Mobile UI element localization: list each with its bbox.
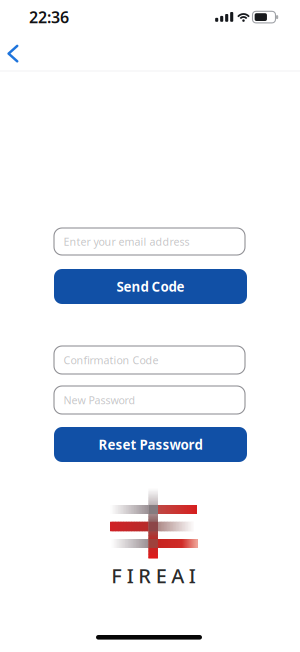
button[interactable]: Enter your email address bbox=[54, 228, 245, 255]
button[interactable]: Send Code bbox=[54, 269, 247, 304]
staticText: A bbox=[171, 562, 184, 589]
staticText: R bbox=[138, 562, 151, 589]
staticText: 22:36 bbox=[29, 6, 69, 28]
button[interactable] bbox=[1, 38, 25, 69]
staticText: Confirmation Code bbox=[63, 353, 158, 367]
staticText: New Password bbox=[63, 393, 135, 407]
staticText: F bbox=[111, 562, 122, 589]
staticText: Reset Password bbox=[98, 436, 202, 453]
staticText: E bbox=[156, 562, 167, 589]
staticText: Enter your email address bbox=[63, 234, 189, 249]
staticText: Send Code bbox=[116, 278, 184, 295]
button[interactable]: Reset Password bbox=[54, 427, 247, 462]
button[interactable]: Confirmation Code bbox=[54, 346, 245, 374]
staticText: I bbox=[189, 562, 196, 589]
button[interactable]: New Password bbox=[54, 386, 245, 414]
staticText: I bbox=[127, 562, 134, 589]
